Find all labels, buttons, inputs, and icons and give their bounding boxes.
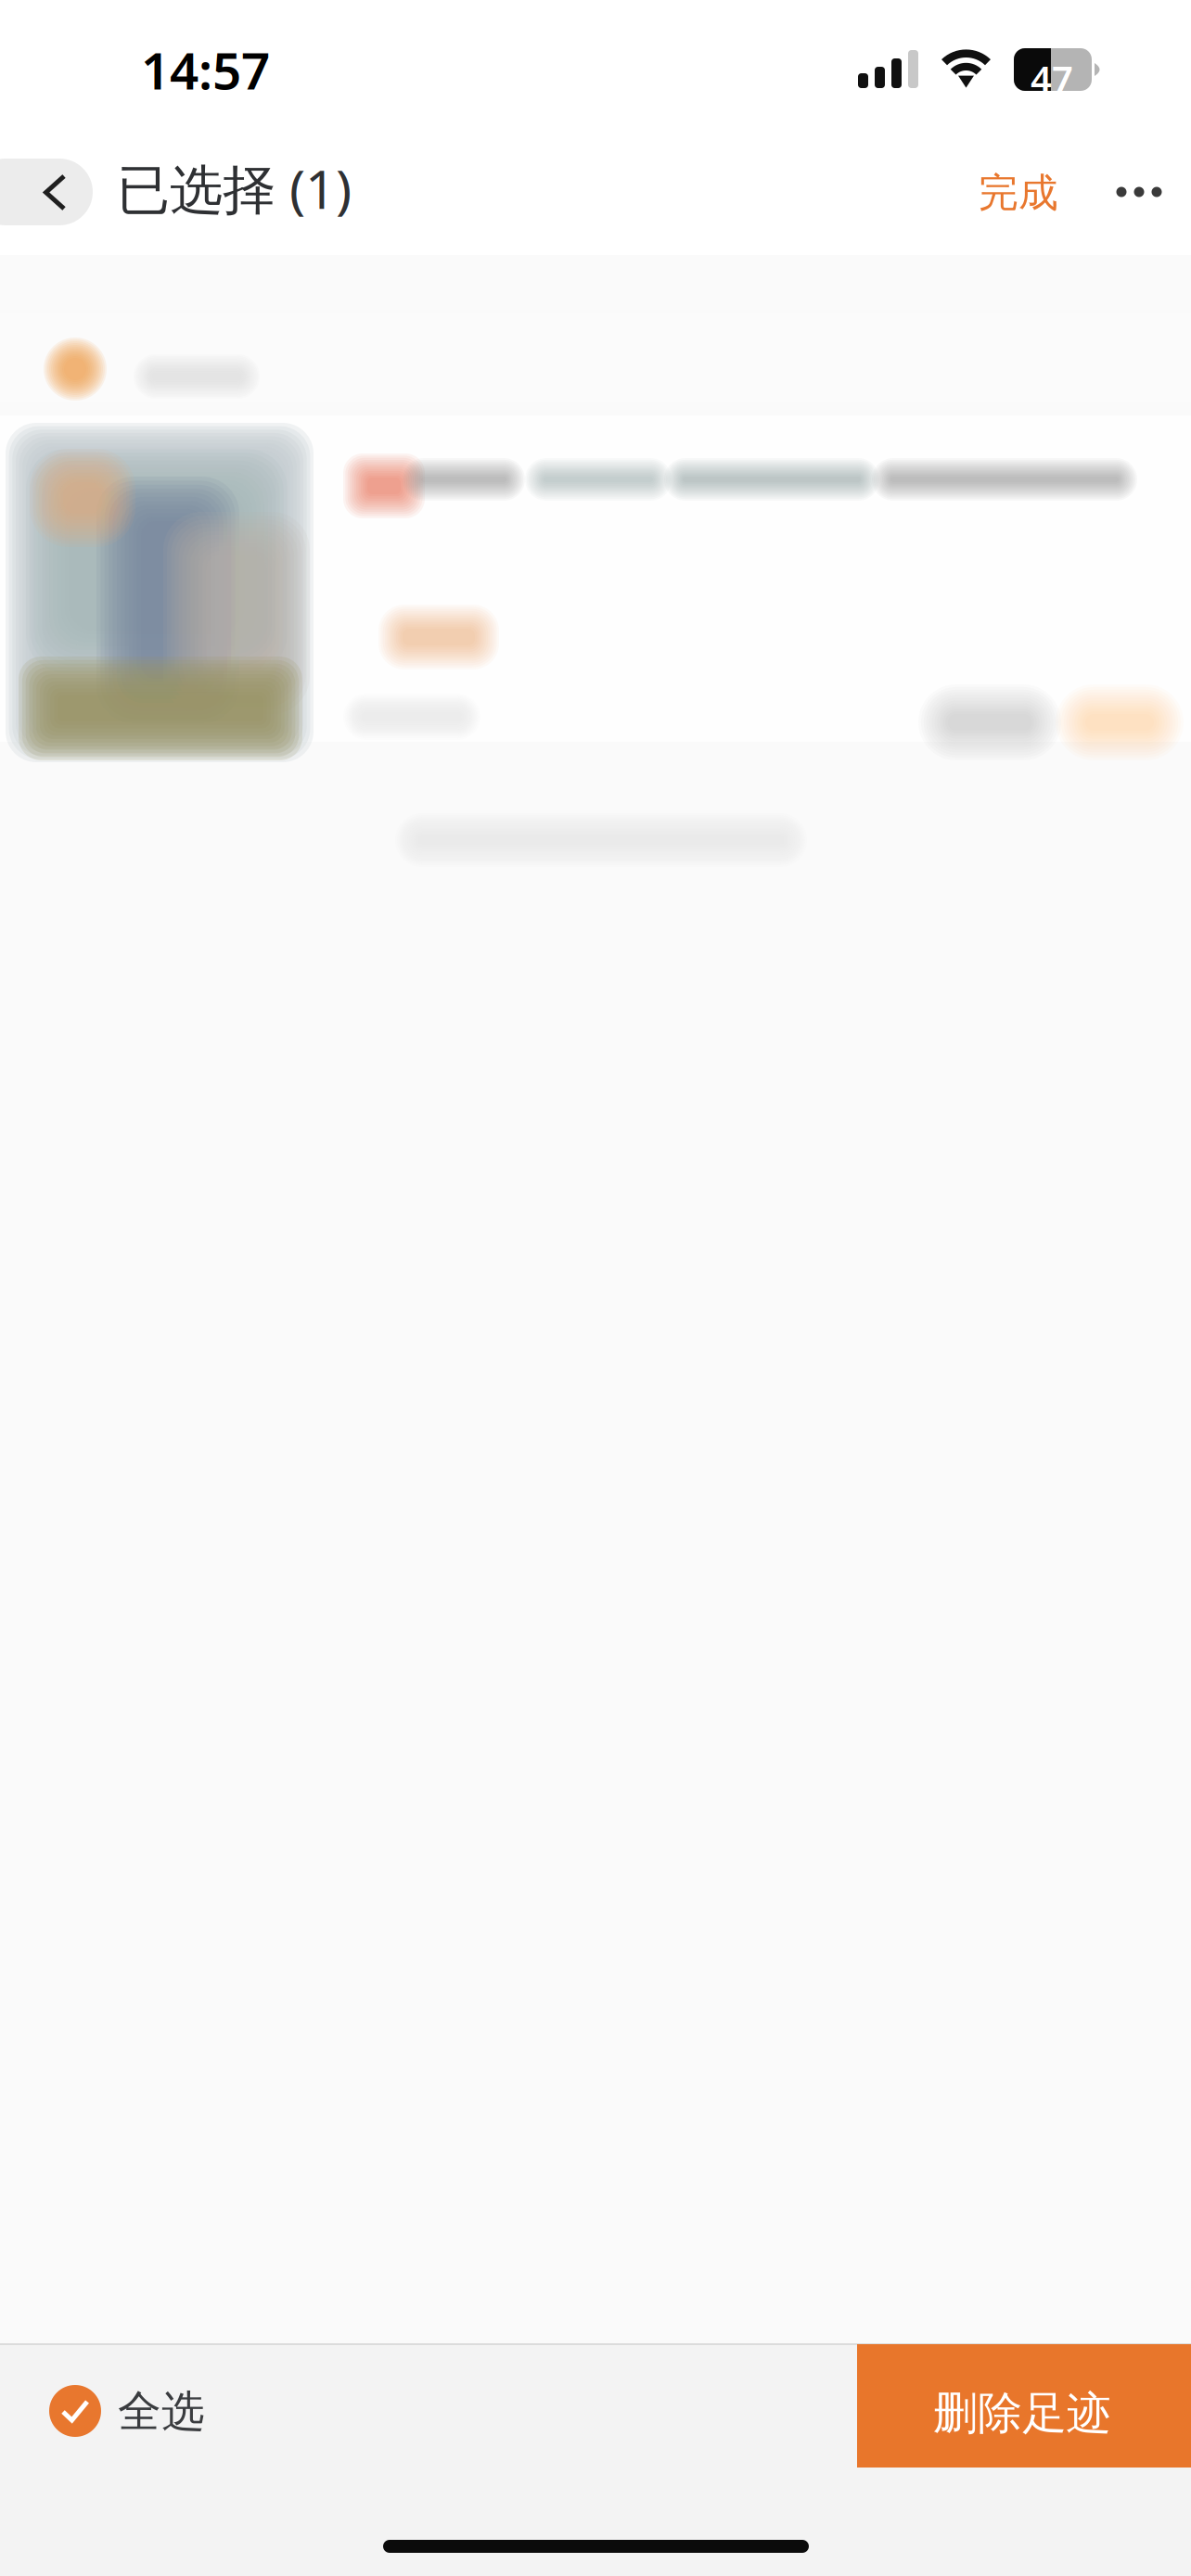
button[interactable]: 已选择 (1) [0, 155, 506, 222]
button[interactable]: 完成 [958, 159, 1079, 226]
staticText: 47 [1031, 54, 1073, 103]
button[interactable]: 全选 [0, 2350, 575, 2473]
button[interactable]: More options [1088, 159, 1190, 225]
staticText: 14:57 [141, 36, 270, 103]
staticText: 完成 [979, 169, 1058, 217]
staticText: 全选 [118, 2385, 205, 2438]
button[interactable]: 删除足迹 [857, 2344, 1191, 2468]
staticText: 已选择 (1) [117, 153, 352, 223]
staticText: 删除足迹 [933, 2386, 1111, 2441]
button[interactable]: Back [0, 159, 93, 225]
